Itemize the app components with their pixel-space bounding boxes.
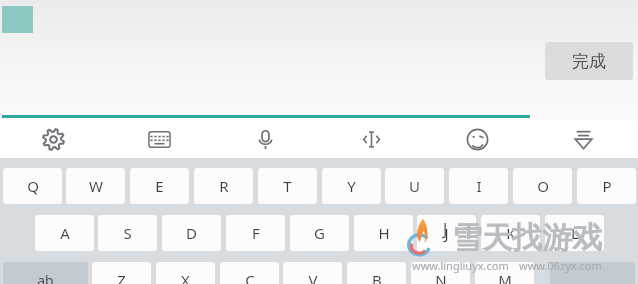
staticText: D bbox=[186, 223, 197, 243]
staticText: Z bbox=[117, 270, 126, 284]
button[interactable]: R bbox=[194, 168, 253, 204]
staticText: T bbox=[283, 176, 292, 196]
staticText: J bbox=[444, 223, 449, 243]
staticText: P bbox=[602, 176, 612, 196]
staticText: A bbox=[60, 223, 70, 243]
button[interactable]: O bbox=[513, 168, 572, 204]
staticText: Y bbox=[347, 176, 356, 196]
staticText: L bbox=[571, 223, 579, 243]
staticText: 雪天找游戏 bbox=[452, 219, 602, 257]
staticText: I bbox=[476, 176, 482, 196]
button[interactable]: Emoji bbox=[424, 121, 530, 158]
button[interactable]: X bbox=[156, 262, 215, 284]
staticText: M bbox=[498, 270, 512, 284]
button[interactable]: Y bbox=[322, 168, 381, 204]
button[interactable] bbox=[550, 262, 635, 284]
button[interactable]: V bbox=[283, 262, 342, 284]
staticText: V bbox=[308, 270, 318, 284]
staticText: www.lingliuyx.com bbox=[412, 258, 509, 273]
button[interactable]: 完成 bbox=[545, 42, 633, 80]
staticText: www.06zyx.com bbox=[519, 258, 602, 273]
staticText: S bbox=[123, 223, 132, 243]
button[interactable]: S bbox=[98, 215, 157, 251]
button[interactable]: H bbox=[354, 215, 413, 251]
button[interactable]: ab bbox=[3, 262, 88, 284]
button[interactable]: Settings bbox=[0, 121, 106, 158]
button[interactable]: I bbox=[449, 168, 508, 204]
staticText: J bbox=[443, 218, 448, 240]
button[interactable]: W bbox=[66, 168, 125, 204]
staticText: R bbox=[219, 176, 229, 196]
button[interactable]: Hide keyboard bbox=[530, 121, 636, 158]
button[interactable]: D bbox=[162, 215, 221, 251]
button[interactable]: Voice input bbox=[212, 121, 318, 158]
button[interactable]: U bbox=[385, 168, 444, 204]
staticText: U bbox=[409, 176, 420, 196]
button[interactable]: P bbox=[577, 168, 636, 204]
button[interactable]: Z bbox=[92, 262, 151, 284]
staticText: G bbox=[314, 223, 325, 243]
staticText: W bbox=[89, 176, 103, 196]
staticText: ab bbox=[37, 271, 54, 284]
staticText: K bbox=[506, 223, 516, 243]
staticText: F bbox=[252, 223, 260, 243]
staticText: E bbox=[155, 176, 164, 196]
button[interactable]: N bbox=[411, 262, 470, 284]
button[interactable]: G bbox=[290, 215, 349, 251]
button[interactable]: A bbox=[35, 215, 94, 251]
staticText: C bbox=[245, 270, 255, 284]
button[interactable]: F bbox=[226, 215, 285, 251]
button[interactable]: K bbox=[481, 215, 540, 251]
staticText: O bbox=[537, 176, 549, 196]
button[interactable]: C bbox=[220, 262, 279, 284]
staticText: N bbox=[435, 270, 447, 284]
button[interactable]: Move cursor bbox=[318, 121, 424, 158]
staticText: X bbox=[181, 270, 190, 284]
button[interactable]: E bbox=[130, 168, 189, 204]
staticText: Q bbox=[27, 176, 39, 196]
button[interactable]: Keyboard layout bbox=[106, 121, 212, 158]
staticText: 完成 bbox=[572, 51, 606, 72]
button[interactable]: J bbox=[417, 215, 476, 251]
staticText: B bbox=[372, 270, 382, 284]
button[interactable]: Q bbox=[3, 168, 62, 204]
button[interactable]: T bbox=[258, 168, 317, 204]
button[interactable]: B bbox=[347, 262, 406, 284]
staticText: H bbox=[378, 223, 390, 243]
button[interactable]: L bbox=[545, 215, 604, 251]
button[interactable]: M bbox=[475, 262, 534, 284]
